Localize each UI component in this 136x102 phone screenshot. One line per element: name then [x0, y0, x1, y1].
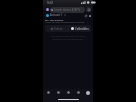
staticText: Tokens: [54, 27, 63, 31]
button[interactable]: Search tokens & NFTs: [50, 7, 85, 13]
button[interactable]: Tokens: [45, 25, 68, 32]
button[interactable]: Activity: [73, 89, 83, 96]
staticText: Account 1: [50, 13, 63, 17]
button[interactable]: Markets: [53, 89, 63, 96]
staticText: MY HOLDINGS: [45, 18, 64, 21]
button[interactable]: Home: [43, 89, 53, 96]
staticText: No tokens to list here yet. Start buildi…: [50, 34, 86, 40]
button[interactable]: Collectibles: [68, 25, 91, 32]
button[interactable]: More options: [88, 14, 91, 17]
button[interactable]: Scan QR code: [86, 7, 91, 12]
staticText: Assets you own or bought with Portfolio: [45, 21, 85, 24]
staticText: Collectibles: [75, 27, 89, 31]
button[interactable]: Copy address: [84, 14, 87, 17]
button[interactable]: Account avatar: [46, 14, 49, 17]
button[interactable]: Profile: [46, 8, 49, 11]
staticText: 9:41: [47, 1, 54, 5]
button[interactable]: Profile: [83, 89, 93, 96]
staticText: Search tokens & NFTs: [54, 8, 81, 12]
button[interactable]: Swap: [63, 89, 73, 96]
